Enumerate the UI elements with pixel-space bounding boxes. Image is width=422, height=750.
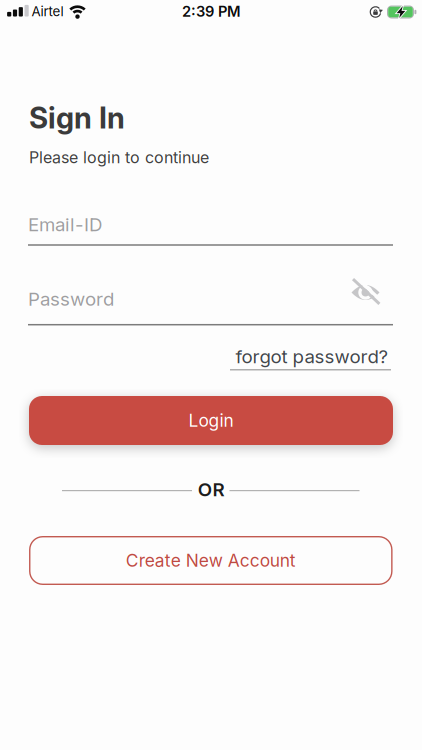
staticText: Login [188, 410, 233, 431]
staticText: Airtel [31, 4, 63, 19]
staticText: Email-ID [28, 213, 102, 235]
staticText: Sign In [29, 100, 125, 135]
staticText: forgot password? [235, 345, 388, 367]
button[interactable] [351, 276, 380, 308]
button[interactable]: forgot password? [188, 345, 388, 367]
staticText: Create New Account [126, 550, 296, 571]
staticText: OR [198, 478, 224, 500]
staticText: Password [28, 288, 114, 310]
staticText: Please login to continue [29, 148, 209, 167]
button[interactable]: Login [29, 396, 393, 445]
staticText: 2:39 PM [182, 3, 241, 20]
button[interactable]: Create New Account [29, 536, 393, 585]
